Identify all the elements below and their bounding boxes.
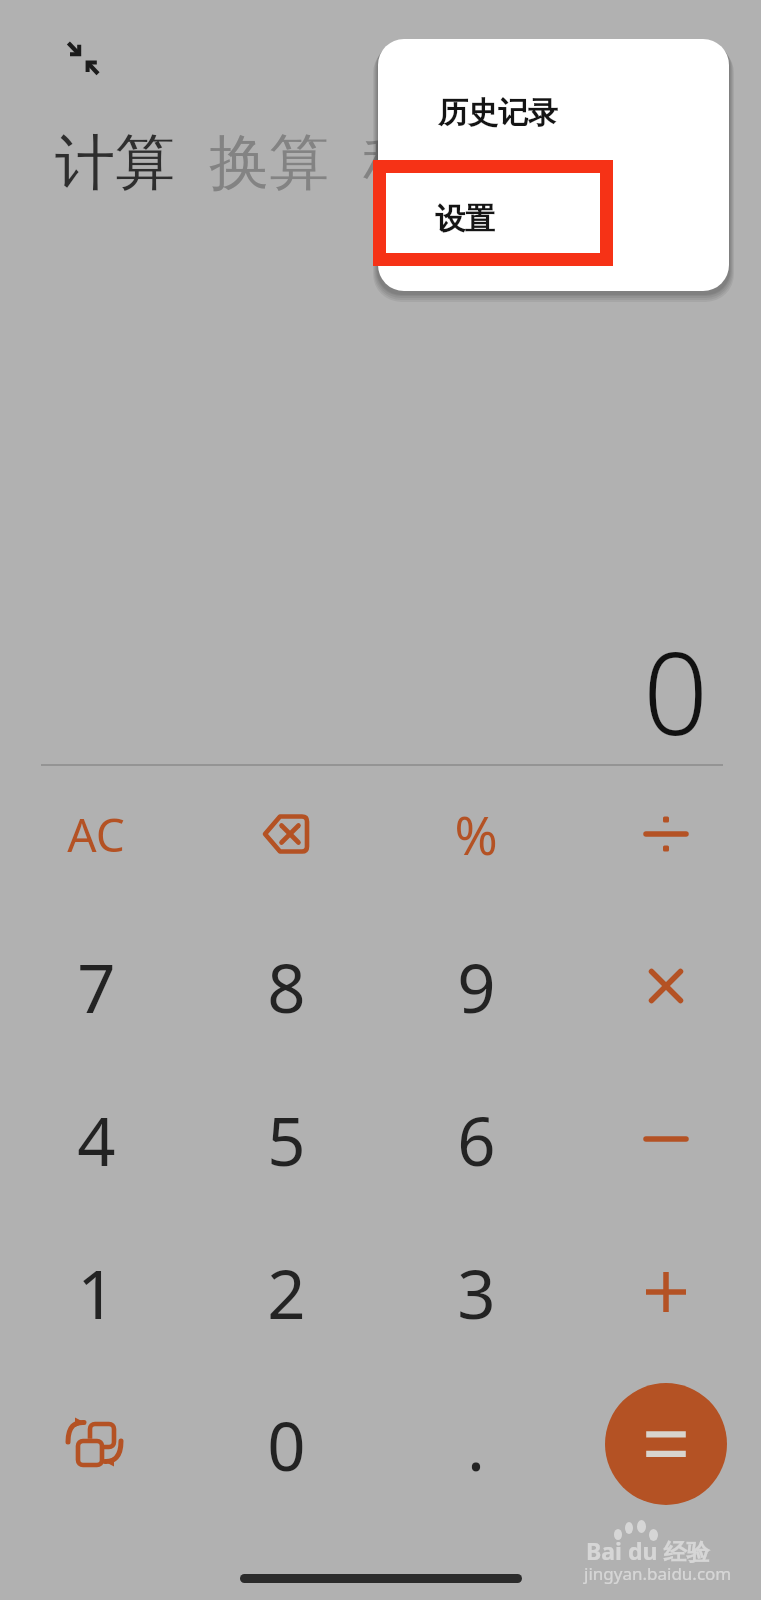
- button[interactable]: %: [401, 759, 551, 909]
- staticText: 6: [457, 1094, 496, 1185]
- staticText: 历史记录: [438, 94, 558, 132]
- button[interactable]: 9: [401, 911, 551, 1061]
- button[interactable]: 设置: [378, 179, 729, 259]
- staticText: 1: [77, 1247, 116, 1338]
- staticText: 科学: [363, 125, 483, 201]
- button[interactable]: AC: [21, 759, 171, 909]
- button[interactable]: 计算: [38, 107, 192, 219]
- button[interactable]: 4: [21, 1064, 171, 1214]
- staticText: 4: [77, 1094, 116, 1185]
- staticText: 计算: [55, 125, 175, 201]
- button[interactable]: 5: [211, 1064, 361, 1214]
- button[interactable]: Convert: [21, 1369, 171, 1519]
- button[interactable]: 6: [401, 1064, 551, 1214]
- button[interactable]: Equals: [605, 1383, 727, 1505]
- button[interactable]: 2: [211, 1217, 361, 1367]
- button[interactable]: 1: [21, 1217, 171, 1367]
- staticText: Bai du 经验: [586, 1535, 710, 1566]
- button[interactable]: Minus: [591, 1064, 741, 1214]
- staticText: jingyan.baidu.com: [584, 1562, 732, 1585]
- button[interactable]: 科学: [346, 107, 500, 219]
- button[interactable]: Plus: [591, 1217, 741, 1367]
- staticText: 9: [457, 941, 496, 1032]
- staticText: 5: [267, 1094, 306, 1185]
- button[interactable]: Multiply: [591, 911, 741, 1061]
- button[interactable]: Collapse: [62, 38, 104, 80]
- staticText: 7: [77, 941, 116, 1032]
- button[interactable]: 8: [211, 911, 361, 1061]
- button[interactable]: Backspace: [211, 759, 361, 909]
- staticText: 2: [267, 1247, 306, 1338]
- staticText: .: [467, 1399, 485, 1490]
- staticText: %: [454, 799, 498, 870]
- button[interactable]: 历史记录: [378, 73, 729, 153]
- button[interactable]: Divide: [591, 759, 741, 909]
- button[interactable]: 0: [211, 1369, 361, 1519]
- staticText: 8: [267, 941, 306, 1032]
- staticText: 0: [643, 613, 709, 768]
- button[interactable]: .: [401, 1369, 551, 1519]
- staticText: 设置: [435, 200, 495, 238]
- staticText: 换算: [209, 125, 329, 201]
- staticText: 3: [457, 1247, 496, 1338]
- button[interactable]: 7: [21, 911, 171, 1061]
- staticText: 0: [267, 1399, 306, 1490]
- staticText: AC: [67, 803, 125, 866]
- button[interactable]: 换算: [192, 107, 346, 219]
- button[interactable]: 3: [401, 1217, 551, 1367]
